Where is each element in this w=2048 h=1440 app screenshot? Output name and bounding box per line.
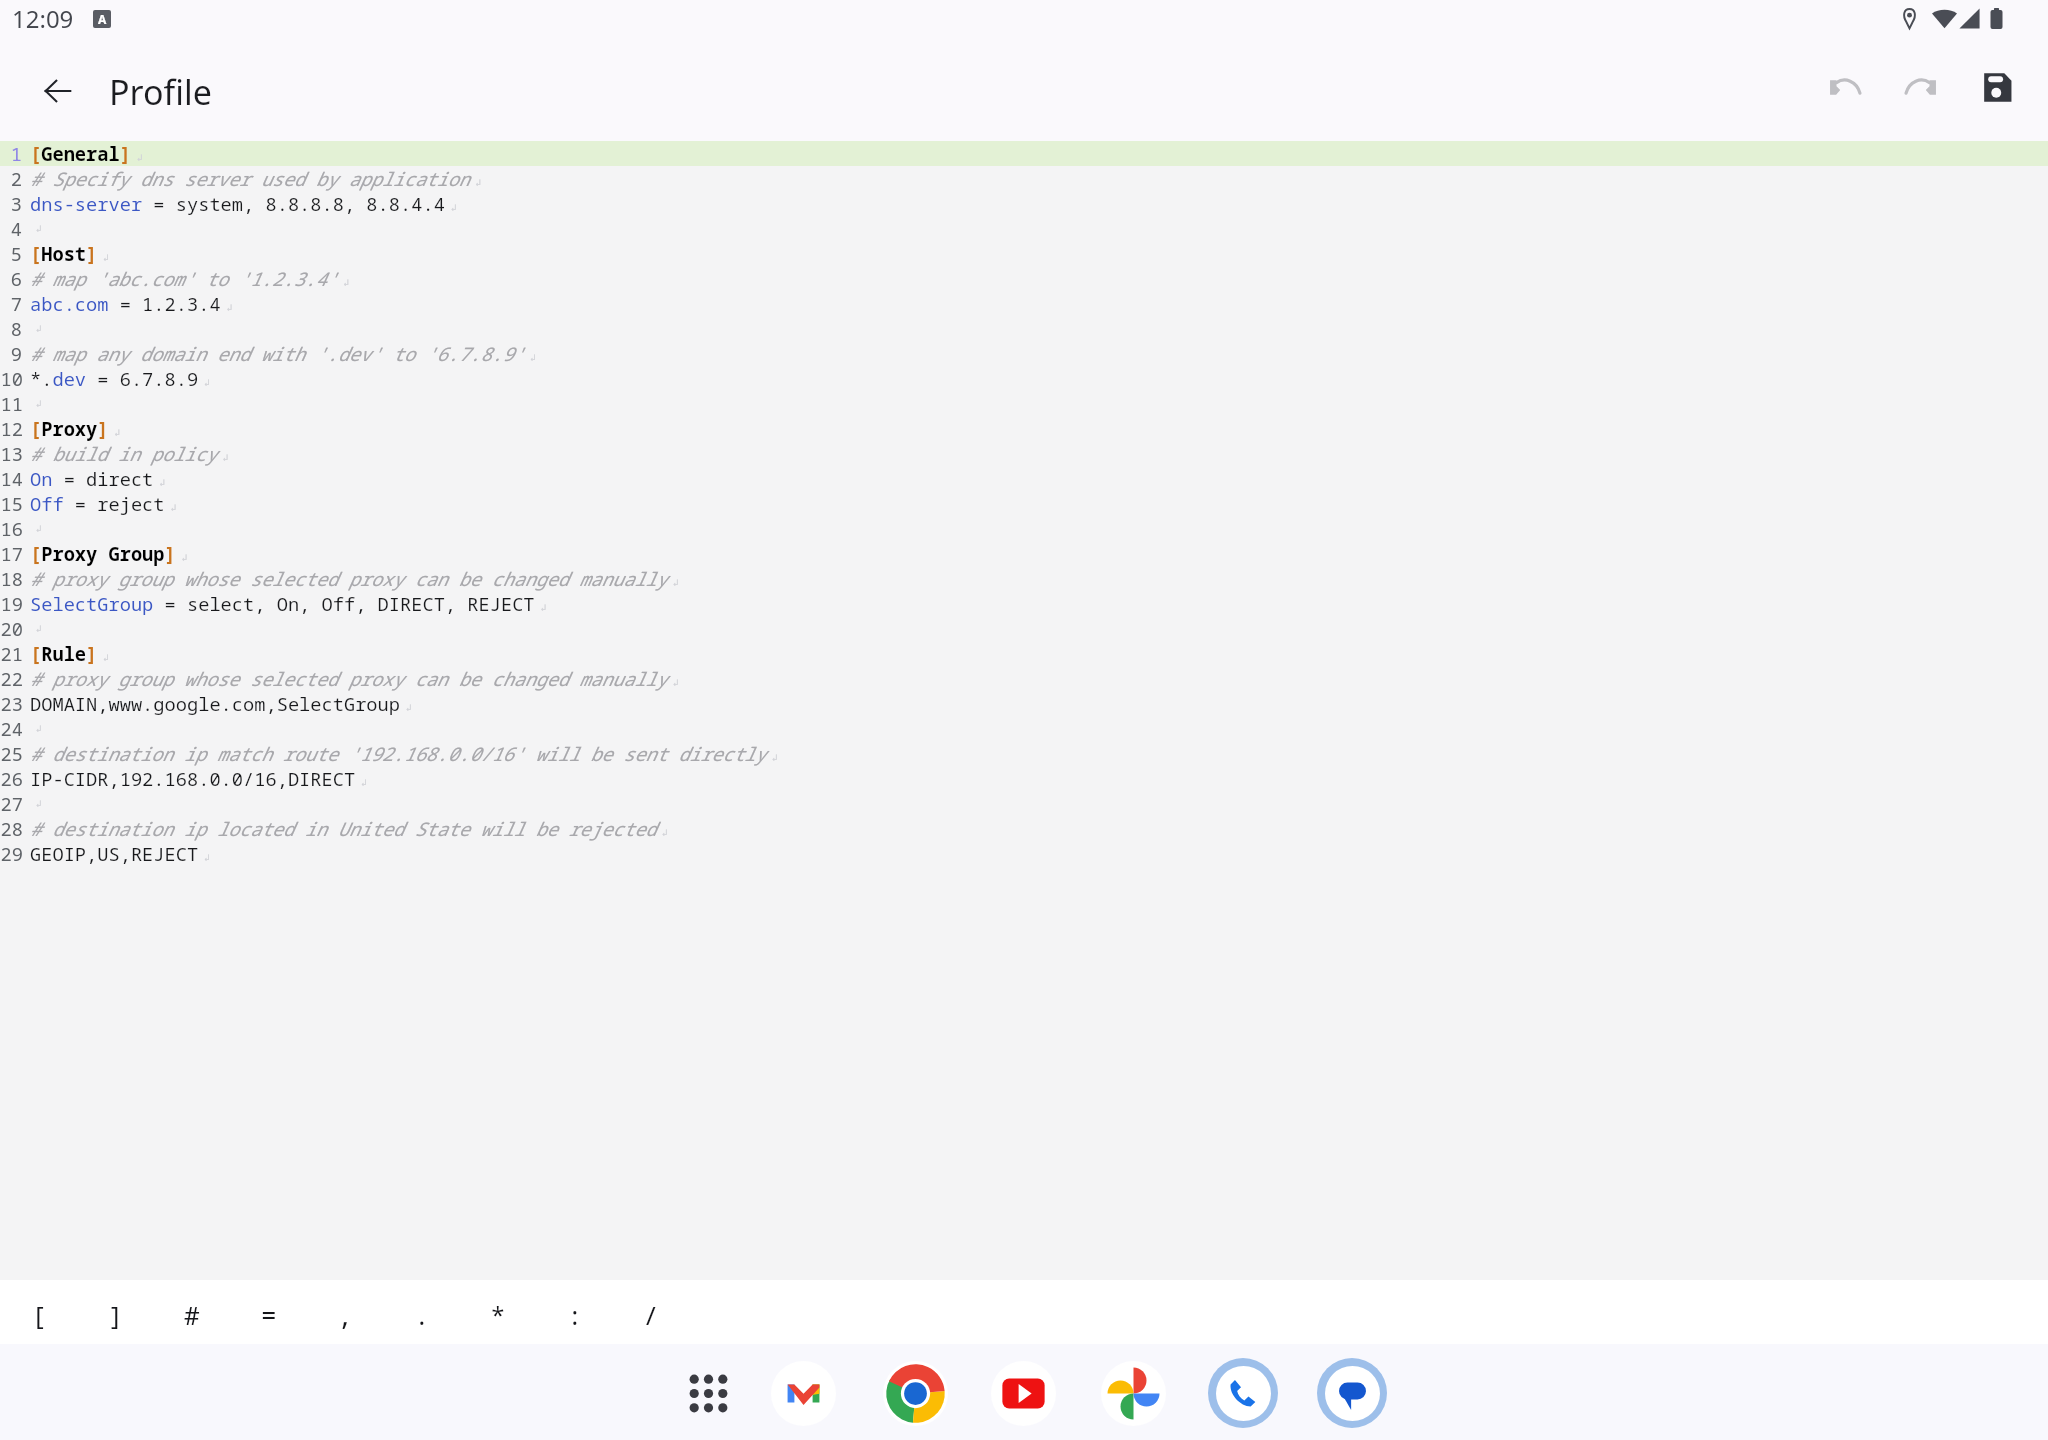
staticText: 25 [0, 741, 22, 766]
button[interactable]: Back [30, 63, 86, 119]
staticText: 8 [0, 316, 22, 341]
staticText: # build in policy ↲ [30, 441, 229, 466]
staticText: . [414, 1297, 430, 1332]
button[interactable]: Messages [1317, 1358, 1387, 1428]
staticText: [Proxy] ↲ [30, 416, 121, 441]
staticText: 15 [0, 491, 22, 516]
staticText: 16 [0, 516, 22, 541]
staticText: 13 [0, 441, 22, 466]
button[interactable]: # [154, 1280, 230, 1344]
staticText: # map 'abc.com' to '1.2.3.4' ↲ [30, 266, 350, 291]
staticText: 7 [0, 291, 22, 316]
staticText: 29 [0, 841, 22, 866]
staticText: 1 [0, 141, 22, 166]
staticText: A [98, 11, 107, 27]
button[interactable]: / [613, 1280, 689, 1344]
button[interactable]: , [307, 1280, 383, 1344]
staticText: # [184, 1297, 200, 1332]
staticText: ] [108, 1297, 124, 1332]
staticText: ↲ [30, 522, 42, 535]
staticText: SelectGroup = select, On, Off, DIRECT, R… [30, 591, 547, 616]
staticText: 12 [0, 416, 22, 441]
staticText: 5 [0, 241, 22, 266]
staticText: # destination ip match route '192.168.0.… [30, 741, 778, 766]
staticText: # proxy group whose selected proxy can b… [30, 566, 679, 591]
staticText: 17 [0, 541, 22, 566]
staticText: [General] ↲ [30, 141, 143, 166]
button[interactable]: [ [1, 1280, 77, 1344]
staticText: 23 [0, 691, 22, 716]
button[interactable]: Phone [1208, 1358, 1278, 1428]
staticText: 2 [0, 166, 22, 191]
staticText: 24 [0, 716, 22, 741]
button[interactable]: Undo [1816, 58, 1874, 116]
staticText: ↲ [30, 322, 42, 335]
staticText: 4 [0, 216, 22, 241]
staticText: * [490, 1297, 506, 1332]
button[interactable]: = [231, 1280, 307, 1344]
staticText: 9 [0, 341, 22, 366]
staticText: # proxy group whose selected proxy can b… [30, 666, 679, 691]
staticText: 11 [0, 391, 22, 416]
button[interactable]: Redo [1892, 58, 1950, 116]
button[interactable]: ] [78, 1280, 154, 1344]
staticText: [Proxy Group] ↲ [30, 541, 188, 566]
staticText: , [337, 1297, 353, 1332]
button[interactable]: . [384, 1280, 460, 1344]
staticText: 20 [0, 616, 22, 641]
staticText: / [643, 1297, 659, 1332]
staticText: IP-CIDR,192.168.0.0/16,DIRECT ↲ [30, 766, 367, 791]
staticText: ↲ [30, 397, 42, 410]
button[interactable]: Photos [1101, 1361, 1166, 1426]
staticText: ↲ [30, 622, 42, 635]
staticText: 22 [0, 666, 22, 691]
staticText: 3 [0, 191, 22, 216]
button[interactable]: Chrome [883, 1361, 948, 1426]
staticText: *.dev = 6.7.8.9 ↲ [30, 366, 210, 391]
staticText: Profile [109, 69, 212, 115]
staticText: 21 [0, 641, 22, 666]
button[interactable]: All apps [674, 1359, 742, 1427]
staticText: : [567, 1297, 583, 1332]
staticText: 10 [0, 366, 22, 391]
staticText: Off = reject ↲ [30, 491, 177, 516]
staticText: = [261, 1297, 277, 1332]
button[interactable]: : [537, 1280, 613, 1344]
staticText: DOMAIN,www.google.com,SelectGroup ↲ [30, 691, 412, 716]
staticText: 28 [0, 816, 22, 841]
staticText: [Host] ↲ [30, 241, 109, 266]
button[interactable]: Save [1968, 58, 2026, 116]
button[interactable]: YouTube [991, 1361, 1056, 1426]
staticText: 14 [0, 466, 22, 491]
staticText: [ [31, 1297, 47, 1332]
staticText: 27 [0, 791, 22, 816]
staticText: [Rule] ↲ [30, 641, 109, 666]
staticText: ↲ [30, 222, 42, 235]
staticText: GEOIP,US,REJECT ↲ [30, 841, 210, 866]
staticText: # destination ip located in United State… [30, 816, 668, 841]
staticText: # map any domain end with '.dev' to '6.7… [30, 341, 536, 366]
staticText: 18 [0, 566, 22, 591]
staticText: 12:09 [12, 2, 74, 35]
button[interactable]: Gmail [771, 1361, 836, 1426]
staticText: 26 [0, 766, 22, 791]
button[interactable]: * [460, 1280, 536, 1344]
staticText: ↲ [30, 797, 42, 810]
staticText: 6 [0, 266, 22, 291]
staticText: ↲ [30, 722, 42, 735]
staticText: 19 [0, 591, 22, 616]
staticText: dns-server = system, 8.8.8.8, 8.8.4.4 ↲ [30, 191, 457, 216]
staticText: abc.com = 1.2.3.4 ↲ [30, 291, 233, 316]
staticText: On = direct ↲ [30, 466, 166, 491]
staticText: # Specify dns server used by application… [30, 166, 481, 191]
